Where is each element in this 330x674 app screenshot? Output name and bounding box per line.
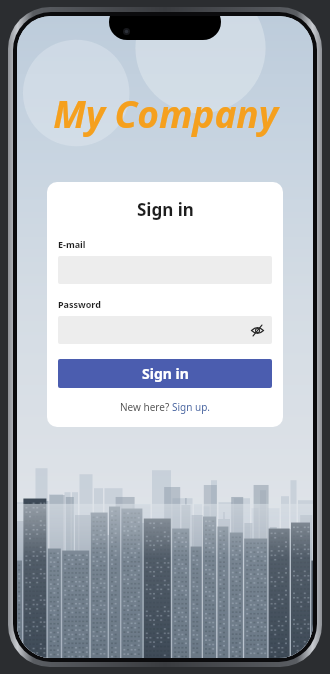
staticText: My Company [53,88,278,138]
staticText: Sign in [137,198,194,221]
button[interactable]: Show password [248,321,266,339]
staticText: E-mail [58,238,272,250]
button[interactable]: New here? [120,400,211,414]
staticText: New here? [120,400,172,414]
staticText: Sign in [142,364,189,383]
staticText: Password [58,298,272,310]
staticText: Sign up. [172,400,211,414]
button[interactable]: Sign in [58,359,272,388]
button[interactable]: Show password [58,316,272,344]
